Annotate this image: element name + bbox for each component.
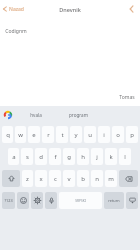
staticText: p [130,131,134,139]
staticText: g [67,153,71,161]
staticText: a [12,153,16,161]
staticText: y [74,131,78,139]
staticText: i [103,131,105,139]
staticText: q [6,131,10,139]
button[interactable]: j [91,148,103,165]
staticText: c [54,175,57,183]
staticText: program [69,112,88,118]
staticText: j [96,153,98,161]
button[interactable]: Next [124,0,140,18]
button[interactable]: h [77,148,89,165]
button[interactable]: hvala [15,106,56,123]
button[interactable]: r [42,126,54,143]
button[interactable]: p [126,126,138,143]
button[interactable]: c [49,170,61,187]
staticText: f [54,153,57,161]
staticText: Tomas [119,94,135,101]
staticText: d [39,153,43,161]
button[interactable]: Hide keyboard [126,192,138,209]
staticText: o [116,131,120,139]
button[interactable]: s [21,148,33,165]
staticText: w [18,131,23,139]
staticText: m [108,175,114,183]
button[interactable]: Tomas [114,91,140,104]
staticText: return [108,198,120,203]
button[interactable]: y [70,126,82,143]
button[interactable]: g [63,148,75,165]
button[interactable]: a [8,148,19,165]
staticText: b [81,175,85,183]
button[interactable]: Nazad [0,0,28,18]
button[interactable]: v [63,170,75,187]
button[interactable]: e [28,126,40,143]
staticText: Nazad [9,6,24,13]
staticText: ?123 [4,198,13,203]
staticText: SRPSKI [75,199,86,203]
staticText: t [61,131,64,139]
button[interactable]: t [56,126,68,143]
button[interactable]: Shift [2,170,20,187]
button[interactable]: b [77,170,89,187]
button[interactable]: Symbols [2,192,15,209]
staticText: z [26,175,29,183]
button[interactable]: i [98,126,110,143]
staticText: k [109,153,113,161]
staticText: x [39,175,43,183]
staticText: Codignm [5,28,27,35]
button[interactable]: f [49,148,61,165]
button[interactable]: o [112,126,124,143]
staticText: r [47,131,50,139]
button[interactable]: n [91,170,103,187]
button[interactable]: m [105,170,117,187]
button[interactable]: k [105,148,117,165]
button[interactable]: Return [104,192,124,209]
staticText: n [95,175,99,183]
button[interactable]: z [22,170,33,187]
button[interactable]: d [35,148,47,165]
staticText: l [124,153,126,161]
staticText: hvala [30,112,42,118]
staticText: e [32,131,36,139]
staticText: u [88,131,92,139]
button[interactable]: l [119,148,131,165]
staticText: v [67,175,71,183]
button[interactable]: Settings [31,192,43,209]
button[interactable]: Backspace [119,170,138,187]
button[interactable]: u [84,126,96,143]
staticText: h [81,153,85,161]
staticText: Dnevnik [59,6,81,13]
button[interactable]: w [15,126,26,143]
button[interactable]: Emoji [17,192,29,209]
button[interactable]: Google [0,106,15,123]
button[interactable]: q [2,126,13,143]
button[interactable]: Voice input [45,192,57,209]
button[interactable]: program [56,106,100,123]
button[interactable]: Space [59,192,102,209]
staticText: s [26,153,29,161]
button[interactable]: x [35,170,47,187]
